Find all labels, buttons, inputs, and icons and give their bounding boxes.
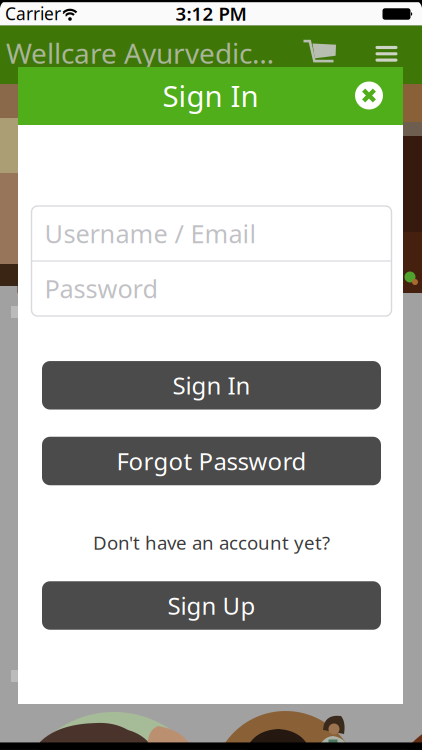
staticText: Sign Up	[167, 590, 255, 621]
staticText: Wellcare Ayurvedic…	[6, 34, 274, 72]
staticText: Sign In	[162, 76, 258, 115]
button[interactable]: Cart	[299, 35, 339, 69]
button[interactable]: Menu	[371, 42, 401, 66]
staticText: Don't have an account yet?	[93, 530, 330, 555]
button[interactable]: Password	[44, 261, 378, 316]
button[interactable]: Close	[355, 81, 383, 109]
button[interactable]: Username / Email	[44, 206, 378, 261]
button[interactable]: Sign Up	[42, 581, 381, 630]
staticText: Forgot Password	[116, 445, 306, 477]
staticText: 3:12 PM	[175, 1, 246, 26]
staticText: Username / Email	[44, 217, 256, 250]
button[interactable]: Forgot Password	[42, 437, 381, 485]
button[interactable]: Sign In	[42, 361, 381, 410]
staticText: Password	[44, 272, 158, 305]
staticText: Sign In	[172, 369, 250, 401]
staticText: Carrier	[5, 2, 61, 25]
